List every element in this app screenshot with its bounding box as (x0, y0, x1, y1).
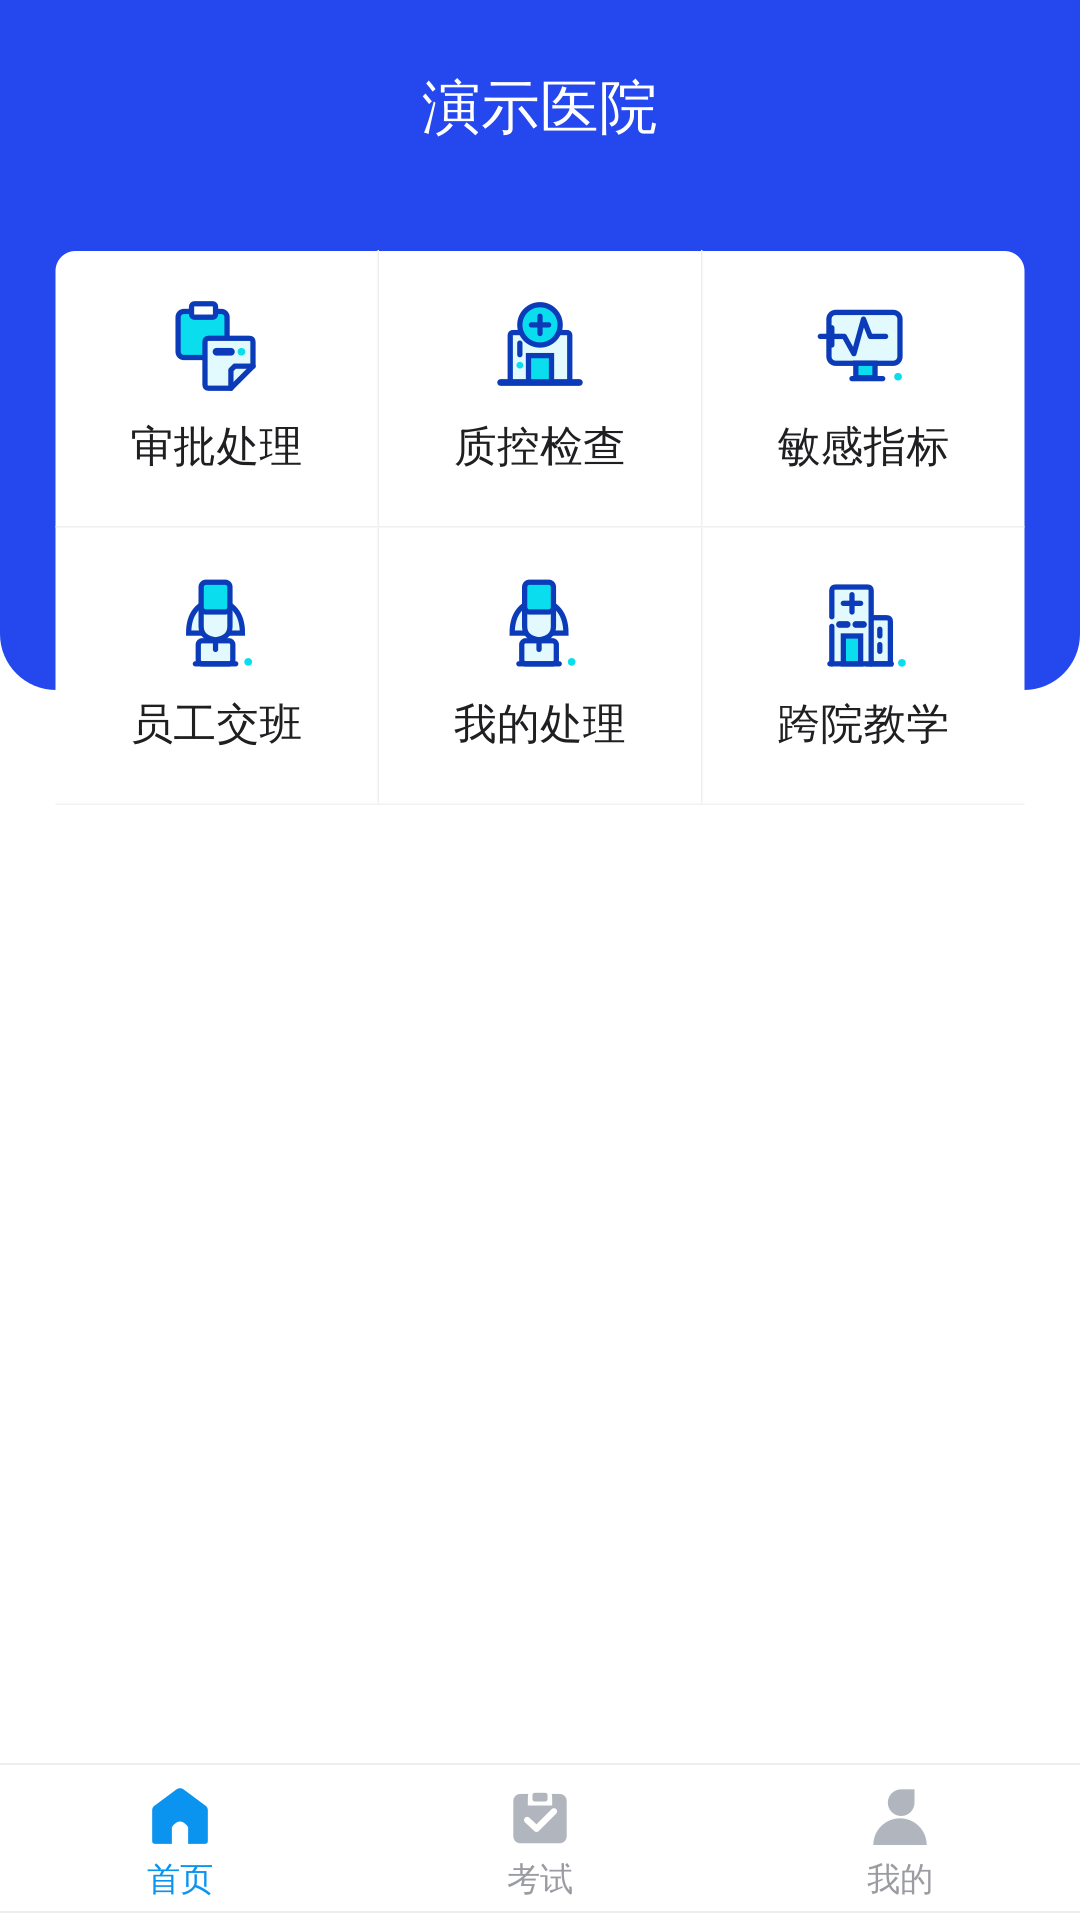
button[interactable]: 敏感指标 (702, 250, 1024, 526)
staticText: 演示医院 (422, 72, 658, 144)
staticText: 质控检查 (454, 421, 626, 473)
button[interactable]: 首页 (0, 1765, 360, 1911)
button[interactable]: 审批处理 (55, 250, 377, 526)
button[interactable]: 质控检查 (379, 250, 701, 526)
staticText: 首页 (147, 1859, 213, 1900)
staticText: 考试 (507, 1859, 573, 1900)
staticText: 跨院教学 (777, 698, 949, 750)
button[interactable]: 员工交班 (55, 527, 377, 803)
staticText: 员工交班 (130, 698, 302, 750)
staticText: 我的 (867, 1859, 933, 1900)
button[interactable]: 跨院教学 (702, 527, 1024, 803)
button[interactable]: 我的处理 (379, 527, 701, 803)
staticText: 我的处理 (454, 698, 626, 750)
button[interactable]: 考试 (360, 1765, 720, 1911)
staticText: 敏感指标 (777, 421, 949, 473)
button[interactable]: 我的 (720, 1765, 1080, 1911)
staticText: 审批处理 (130, 421, 302, 473)
